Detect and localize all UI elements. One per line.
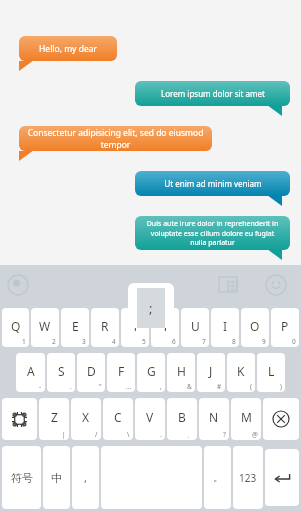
staticText: @ [252, 430, 258, 439]
staticText: 。 [213, 471, 223, 484]
staticText: W [39, 318, 51, 334]
button[interactable]: Y [151, 308, 179, 347]
staticText: K [237, 363, 245, 379]
staticText: D [87, 363, 96, 379]
button[interactable]: C [103, 398, 133, 440]
button[interactable]: Handwriting [7, 274, 29, 296]
button[interactable]: K [227, 353, 255, 392]
button[interactable]: T [121, 308, 149, 347]
button[interactable]: V [135, 398, 165, 440]
staticText: Consectetur adipisicing elit, sed do eiu… [26, 127, 205, 150]
button[interactable]: 。 [204, 446, 231, 509]
staticText: Z [51, 409, 58, 425]
staticText: 6 [172, 337, 176, 346]
button[interactable]: 符号 [2, 446, 41, 509]
button[interactable]: A [16, 353, 45, 392]
button[interactable]: F [107, 353, 135, 392]
button[interactable]: Ut enim ad minim veniam [135, 171, 290, 196]
staticText: E [72, 318, 79, 334]
button[interactable]: 中 [43, 446, 70, 509]
staticText: Ut enim ad minim veniam [164, 178, 262, 189]
staticText: M [241, 409, 252, 425]
staticText: L [268, 363, 275, 379]
staticText: V [146, 409, 154, 425]
staticText: N [209, 409, 219, 425]
staticText: T [132, 318, 139, 334]
staticText: H [177, 363, 186, 379]
staticText: . [160, 430, 162, 439]
staticText: ? [223, 430, 226, 439]
staticText: 1 [22, 337, 26, 346]
staticText: . [70, 382, 72, 391]
staticText: 9 [262, 337, 266, 346]
staticText: 8 [232, 337, 236, 346]
button[interactable]: X [71, 398, 101, 440]
staticText: , [160, 382, 162, 391]
staticText: A [27, 363, 35, 379]
button[interactable]: E [61, 308, 89, 347]
button[interactable]: D [77, 353, 105, 392]
button[interactable]: W [31, 308, 59, 347]
button[interactable]: H [167, 353, 195, 392]
staticText: | [62, 430, 66, 439]
button[interactable]: Consectetur adipisicing elit, sed do eiu… [19, 126, 212, 151]
button[interactable]: I [211, 308, 239, 347]
staticText: ( [250, 382, 252, 391]
staticText: Lorem ipsum dolor sit amet [161, 88, 265, 99]
staticText: R [101, 318, 109, 334]
button[interactable]: O [241, 308, 269, 347]
staticText: 0 [292, 337, 296, 346]
button[interactable]: Backspace [263, 398, 299, 440]
staticText: 2 [52, 337, 56, 346]
staticText: 、 [187, 431, 194, 439]
button[interactable]: 123 [233, 446, 263, 509]
button[interactable]: L [257, 353, 285, 392]
staticText: 中 [51, 471, 62, 485]
button[interactable]: Keyboard layout [218, 275, 238, 295]
staticText: # [217, 382, 222, 391]
button[interactable]: Q [2, 308, 29, 347]
staticText: ) [280, 382, 282, 391]
button[interactable]: M [231, 398, 261, 440]
button[interactable]: B [167, 398, 197, 440]
staticText: 7 [202, 337, 206, 346]
staticText: ; [149, 299, 153, 317]
button[interactable]: Hello, my dear [19, 36, 117, 61]
staticText: Q [11, 318, 21, 334]
staticText: - [39, 382, 42, 391]
staticText: 123 [239, 471, 257, 485]
button[interactable]: Z [39, 398, 69, 440]
button[interactable]: S [47, 353, 75, 392]
button[interactable]: N [199, 398, 229, 440]
staticText: " [99, 382, 102, 391]
staticText: 符号 [11, 471, 33, 485]
staticText: G [147, 363, 156, 379]
button[interactable]: P [271, 308, 299, 347]
staticText: J [209, 363, 213, 379]
staticText: 4 [112, 337, 116, 346]
button[interactable]: G [137, 353, 165, 392]
staticText: , [84, 470, 87, 485]
staticText: U [191, 318, 200, 334]
button[interactable]: , [72, 446, 99, 509]
staticText: I [223, 318, 228, 334]
staticText: & [187, 382, 192, 391]
button[interactable]: U [181, 308, 209, 347]
button[interactable]: R [91, 308, 119, 347]
staticText: ... [126, 382, 132, 391]
staticText: S [58, 363, 65, 379]
button[interactable]: Shift [2, 398, 37, 440]
staticText: 5 [142, 337, 146, 346]
button[interactable]: J [197, 353, 225, 392]
button[interactable]: Lorem ipsum dolor sit amet [135, 81, 290, 106]
staticText: Duis aute irure dolor in reprehenderit i… [142, 219, 283, 247]
button[interactable]: Emoji [265, 274, 287, 296]
staticText: F [118, 363, 125, 379]
staticText: 3 [82, 337, 86, 346]
button[interactable]: Duis aute irure dolor in reprehenderit i… [135, 216, 290, 250]
button[interactable]: Enter [265, 449, 299, 506]
staticText: Hello, my dear [39, 43, 97, 55]
